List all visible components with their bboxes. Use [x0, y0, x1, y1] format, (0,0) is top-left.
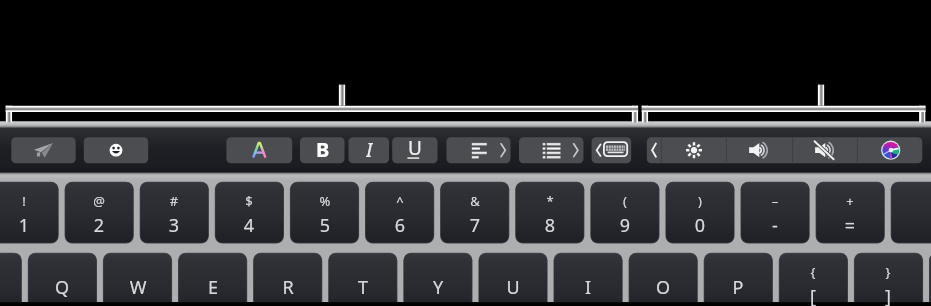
staticText: @ [65, 192, 133, 208]
staticText: } [854, 263, 922, 279]
staticText: $ [215, 192, 283, 208]
staticText: ) [666, 192, 734, 208]
button[interactable]: @ [65, 182, 133, 243]
staticText: ( [591, 192, 659, 208]
staticText: ! [0, 192, 58, 208]
staticText: B [316, 136, 330, 162]
button[interactable]: ^ [366, 182, 434, 243]
staticText: I [554, 275, 622, 299]
button[interactable]: P [704, 253, 772, 306]
button[interactable]: # [140, 182, 208, 243]
staticText: O [629, 275, 697, 299]
staticText: U [479, 275, 547, 299]
staticText: 5 [291, 213, 359, 235]
staticText: + [816, 192, 884, 208]
staticText: % [291, 192, 359, 208]
staticText: = [816, 213, 884, 235]
staticText: 1 [0, 213, 58, 235]
button[interactable]: Italic [349, 137, 390, 163]
button[interactable]: I [554, 253, 622, 306]
staticText: W [104, 275, 172, 299]
button[interactable]: Bold [300, 137, 345, 163]
staticText: 3 [140, 213, 208, 235]
staticText: Q [28, 275, 96, 299]
button[interactable]: ( [591, 182, 659, 243]
staticText: - [741, 213, 809, 235]
staticText: E [179, 275, 247, 299]
button[interactable]: O [629, 253, 697, 306]
button[interactable]: * [516, 182, 584, 243]
staticText: # [140, 192, 208, 208]
button[interactable]: U [479, 253, 547, 306]
staticText: 8 [516, 213, 584, 235]
button[interactable]: ) [666, 182, 734, 243]
staticText: ] [854, 284, 922, 306]
staticText: T [329, 275, 397, 299]
button[interactable]: E [179, 253, 247, 306]
staticText: U [408, 135, 422, 161]
staticText: I [366, 136, 373, 162]
staticText: 0 [666, 213, 734, 235]
button[interactable]: + [816, 182, 884, 243]
staticText: * [516, 192, 584, 208]
staticText: 9 [591, 213, 659, 235]
staticText: [ [779, 284, 847, 306]
button[interactable]: Y [404, 253, 472, 306]
staticText: 4 [215, 213, 283, 235]
staticText: P [704, 275, 772, 299]
button[interactable]: } [854, 253, 922, 306]
button[interactable]: R [254, 253, 322, 306]
staticText: & [441, 192, 509, 208]
staticText: 7 [441, 213, 509, 235]
button[interactable]: % [291, 182, 359, 243]
staticText: – [741, 192, 809, 208]
button[interactable]: ! [0, 182, 58, 243]
button[interactable]: { [779, 253, 847, 306]
button[interactable]: $ [215, 182, 283, 243]
staticText: { [779, 263, 847, 279]
button[interactable]: W [104, 253, 172, 306]
staticText: R [254, 275, 322, 299]
button[interactable]: Underline [392, 137, 437, 163]
staticText: 6 [366, 213, 434, 235]
staticText: 2 [65, 213, 133, 235]
staticText: Y [404, 275, 472, 299]
staticText: ^ [366, 192, 434, 208]
button[interactable]: & [441, 182, 509, 243]
button[interactable]: Q [28, 253, 96, 306]
button[interactable]: T [329, 253, 397, 306]
button[interactable]: – [741, 182, 809, 243]
